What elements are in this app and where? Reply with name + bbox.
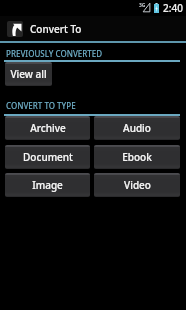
- button[interactable]: Image: [5, 173, 90, 197]
- button[interactable]: Document: [5, 145, 90, 169]
- staticText: Convert To: [30, 22, 82, 36]
- staticText: Ebook: [122, 150, 152, 164]
- button[interactable]: Audio: [94, 116, 180, 140]
- button[interactable]: Archive: [5, 116, 90, 140]
- staticText: Document: [23, 150, 73, 164]
- staticText: Archive: [30, 121, 66, 135]
- staticText: View all: [10, 67, 47, 81]
- staticText: CONVERT TO TYPE: [6, 100, 76, 111]
- staticText: 3G: [139, 2, 146, 9]
- button[interactable]: Video: [94, 173, 180, 197]
- staticText: Image: [32, 178, 63, 192]
- button[interactable]: View all: [5, 62, 52, 86]
- staticText: Audio: [123, 121, 151, 135]
- staticText: PREVIOUSLY CONVERTED: [6, 48, 103, 59]
- button[interactable]: App icon: [7, 21, 23, 37]
- staticText: 2:40: [163, 1, 183, 15]
- staticText: Video: [124, 178, 151, 192]
- button[interactable]: Ebook: [94, 145, 180, 169]
